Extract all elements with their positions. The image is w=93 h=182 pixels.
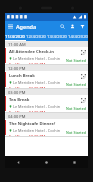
button[interactable]: Search — [57, 21, 67, 32]
staticText: 13/4/2020 — [47, 34, 67, 40]
staticText: 04:00 PM — [8, 114, 26, 119]
button[interactable]: Filter — [77, 21, 88, 32]
staticText: End Time : 04:00 PM — [9, 110, 46, 112]
button[interactable]: Scan QR code — [80, 73, 86, 79]
button[interactable]: All Attendee Check-in — [5, 47, 88, 64]
button[interactable]: Lunch Break — [5, 71, 88, 88]
staticText: 11:00 AM — [8, 42, 26, 47]
button[interactable]: Account — [67, 21, 77, 32]
staticText: End Time : 01:00 PM — [9, 86, 46, 88]
staticText: Le Meridien Hotel - Cochin — [13, 80, 61, 85]
staticText: 12/4/2020 — [26, 34, 46, 40]
button[interactable]: The Nightcafe Dinner/Dessert — [5, 119, 88, 136]
staticText: 03:00 PM — [8, 90, 26, 95]
staticText: Tea Break — [9, 97, 30, 103]
button[interactable]: Open navigation menu — [5, 21, 16, 32]
staticText: Not Started Yet — [64, 106, 86, 111]
button[interactable]: Back — [5, 156, 32, 168]
staticText: 14/4/2020 — [68, 34, 88, 40]
button[interactable]: 12/4/2020 — [25, 32, 46, 41]
staticText: Not Started Yet — [64, 82, 86, 87]
staticText: Agenda — [16, 23, 57, 30]
staticText: 11/4/2020 — [5, 34, 25, 40]
button[interactable]: 14/4/2020 — [67, 32, 88, 41]
staticText: End Time : 12:00 PM — [9, 62, 46, 64]
button[interactable]: Scan QR code — [80, 49, 86, 55]
staticText: Le Meridien Hotel - Cochin — [13, 104, 61, 109]
staticText: Lunch Break — [9, 73, 35, 79]
staticText: 12:00 PM — [8, 66, 26, 71]
button[interactable]: Scan QR code — [80, 97, 86, 103]
button[interactable]: Recent apps — [60, 156, 88, 168]
staticText: The Nightcafe Dinner/Dessert — [9, 121, 64, 127]
staticText: End Time : 10:00 PM — [9, 134, 46, 136]
button[interactable]: Tea Break — [5, 95, 88, 112]
staticText: Not Started Yet — [64, 130, 86, 135]
button[interactable]: 11/4/2020 — [5, 32, 25, 41]
staticText: Not Started Yet — [64, 58, 86, 63]
staticText: All Attendee Check-in — [9, 49, 54, 55]
button[interactable]: Home — [32, 156, 60, 168]
staticText: Le Meridien Hotel - Cochin — [13, 56, 61, 61]
button[interactable]: 13/4/2020 — [46, 32, 67, 41]
staticText: Le Meridien Hotel - Cochin — [13, 128, 61, 133]
